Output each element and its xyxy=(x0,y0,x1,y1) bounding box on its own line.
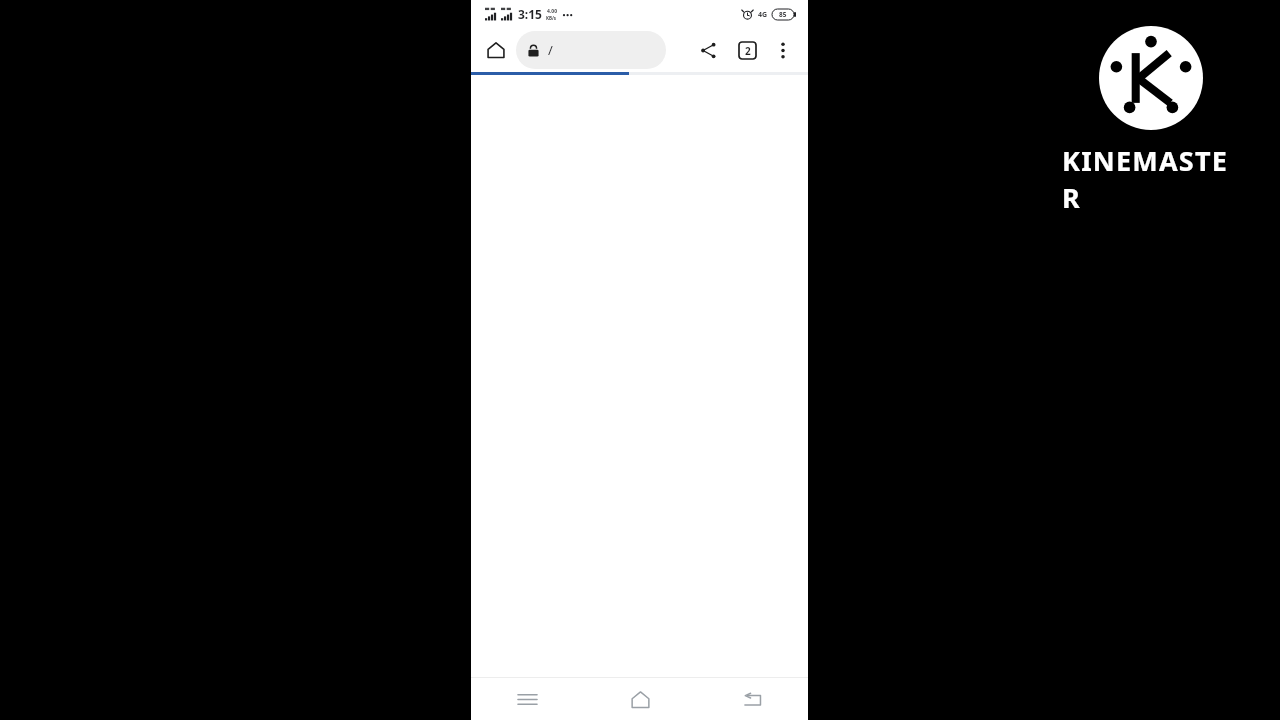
button[interactable]: More options xyxy=(766,33,800,67)
button[interactable]: Recent apps xyxy=(471,678,584,720)
staticText: 4G xyxy=(758,10,768,20)
button[interactable]: Home xyxy=(584,678,696,720)
staticText: /ords.google.com xyxy=(548,41,654,59)
staticText: KB/s xyxy=(546,15,557,21)
staticText: 3:15 xyxy=(518,6,542,22)
button[interactable]: Tabs, 2 open xyxy=(730,33,764,67)
staticText: 2 xyxy=(745,44,751,58)
button[interactable]: /ords.google.com xyxy=(516,31,666,69)
staticText: 4.00 xyxy=(547,8,557,15)
button[interactable]: Home xyxy=(481,35,511,65)
staticText: 85 xyxy=(779,10,787,19)
staticText: KINEMASTER xyxy=(1062,142,1240,216)
button[interactable]: Back xyxy=(696,678,808,720)
button[interactable]: Share xyxy=(691,33,725,67)
